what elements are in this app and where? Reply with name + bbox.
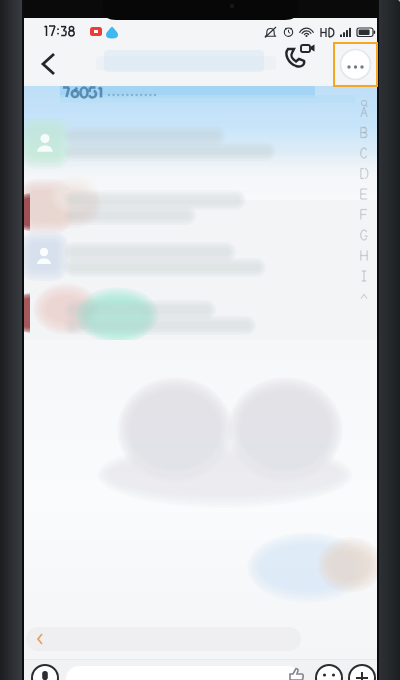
button[interactable] xyxy=(24,84,377,124)
button[interactable] xyxy=(24,124,377,186)
button[interactable] xyxy=(24,248,377,308)
button[interactable]: Video call xyxy=(296,48,334,82)
button[interactable]: Message input xyxy=(70,662,290,680)
button[interactable]: Voice message xyxy=(28,660,68,680)
button[interactable]: More xyxy=(352,660,382,680)
button[interactable]: Emoji xyxy=(322,660,352,680)
button[interactable]: Back xyxy=(32,48,72,84)
button[interactable] xyxy=(24,308,377,370)
button[interactable]: Thumbs up xyxy=(295,662,321,680)
button[interactable] xyxy=(24,186,377,248)
button[interactable]: Alphabet index xyxy=(356,100,374,296)
button[interactable]: More options xyxy=(334,44,376,86)
